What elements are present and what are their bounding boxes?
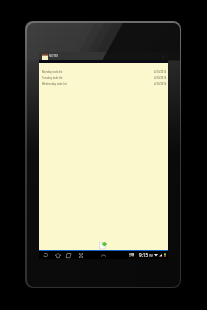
staticText: Tuesday todo list <box>42 76 63 80</box>
button[interactable]: New note <box>98 241 109 250</box>
button[interactable]: Wednesday todo list <box>39 81 168 87</box>
staticText: PM <box>149 254 153 258</box>
staticText: Wednesday todo list <box>42 82 67 86</box>
button[interactable]: Screenshot <box>75 251 86 259</box>
staticText: 4/30/2014 <box>154 82 167 86</box>
staticText: 4/30/2014 <box>154 76 167 80</box>
button[interactable]: Home <box>52 251 63 259</box>
button[interactable]: Monday todo list <box>39 69 168 75</box>
button[interactable]: Tuesday todo list <box>39 75 168 81</box>
staticText: 9:15 <box>139 252 149 258</box>
button[interactable]: Show navigation <box>98 251 109 259</box>
staticText: 4/30/2014 <box>154 70 167 74</box>
button[interactable]: Back <box>40 251 51 259</box>
button[interactable]: Recent apps <box>63 251 74 259</box>
staticText: NOTES <box>49 54 59 58</box>
staticText: Monday todo list <box>42 70 63 74</box>
